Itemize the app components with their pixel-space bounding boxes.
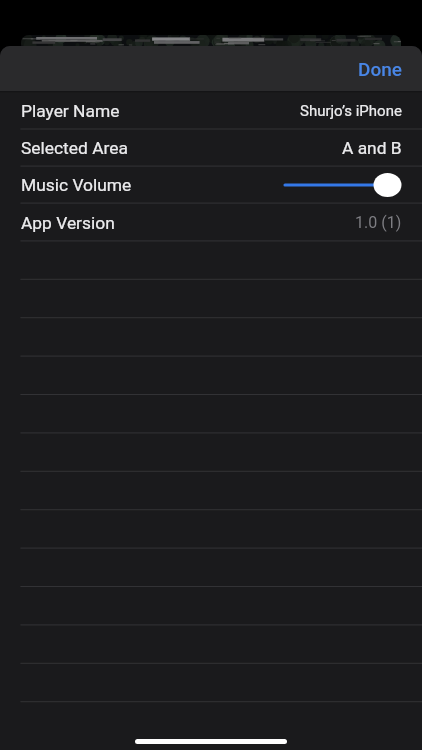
staticText: 1.0 (1) — [355, 213, 402, 232]
staticText: Selected Area — [21, 138, 128, 158]
staticText: App Version — [21, 213, 115, 233]
staticText: Done — [358, 58, 402, 80]
staticText: A and B — [342, 138, 402, 158]
button[interactable]: Music volume slider — [285, 170, 402, 200]
button[interactable]: Selected Area — [0, 130, 422, 166]
staticText: Player Name — [21, 101, 120, 121]
button[interactable]: Player Name — [0, 92, 422, 129]
button[interactable]: App Version — [0, 204, 422, 241]
staticText: Music Volume — [21, 175, 132, 195]
button[interactable]: Done — [344, 48, 416, 90]
staticText: Shurjo’s iPhone — [300, 102, 402, 120]
